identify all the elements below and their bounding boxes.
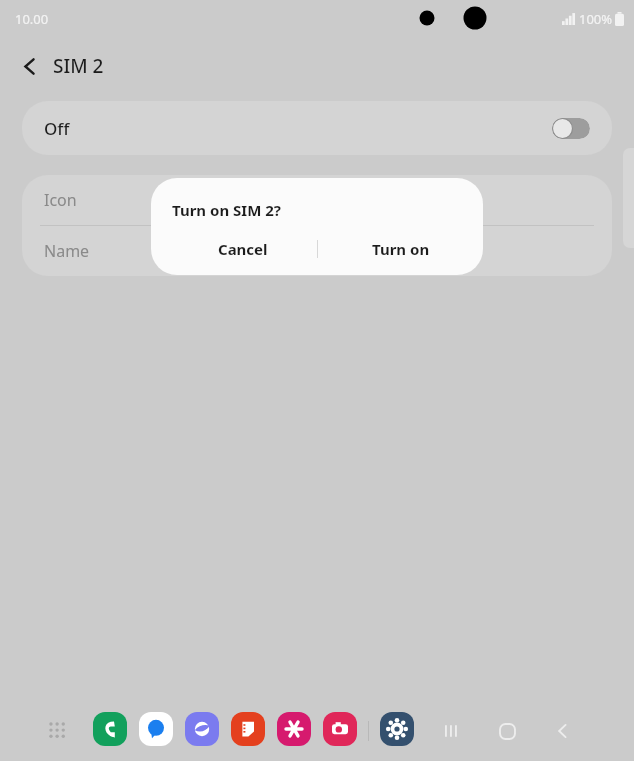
- staticText: 10.00: [15, 10, 49, 28]
- staticText: 100%: [579, 10, 613, 28]
- staticText: Off: [44, 117, 70, 140]
- button[interactable]: Notes: [231, 712, 265, 746]
- button[interactable]: Back: [543, 711, 583, 751]
- staticText: Cancel: [218, 239, 268, 259]
- button[interactable]: Phone: [93, 712, 127, 746]
- staticText: Name: [44, 240, 90, 262]
- button[interactable]: Icon: [22, 175, 612, 225]
- button[interactable]: Toggle SIM 2: [552, 118, 590, 139]
- button[interactable]: Cancel: [169, 230, 317, 268]
- button[interactable]: Recents: [432, 711, 472, 751]
- button[interactable]: Messages: [139, 712, 173, 746]
- button[interactable]: Settings: [380, 712, 414, 746]
- staticText: SIM 2: [53, 53, 104, 79]
- button[interactable]: Camera: [323, 712, 357, 746]
- button[interactable]: Off: [22, 101, 612, 155]
- button[interactable]: Gallery: [277, 712, 311, 746]
- button[interactable]: Home: [487, 711, 527, 751]
- button[interactable]: Internet: [185, 712, 219, 746]
- staticText: Turn on SIM 2?: [172, 200, 281, 220]
- button[interactable]: Name: [22, 226, 612, 276]
- button[interactable]: Back: [12, 48, 48, 84]
- button[interactable]: Apps: [40, 713, 76, 749]
- staticText: Icon: [44, 189, 77, 211]
- staticText: Turn on: [372, 239, 430, 259]
- button[interactable]: Turn on: [318, 230, 483, 268]
